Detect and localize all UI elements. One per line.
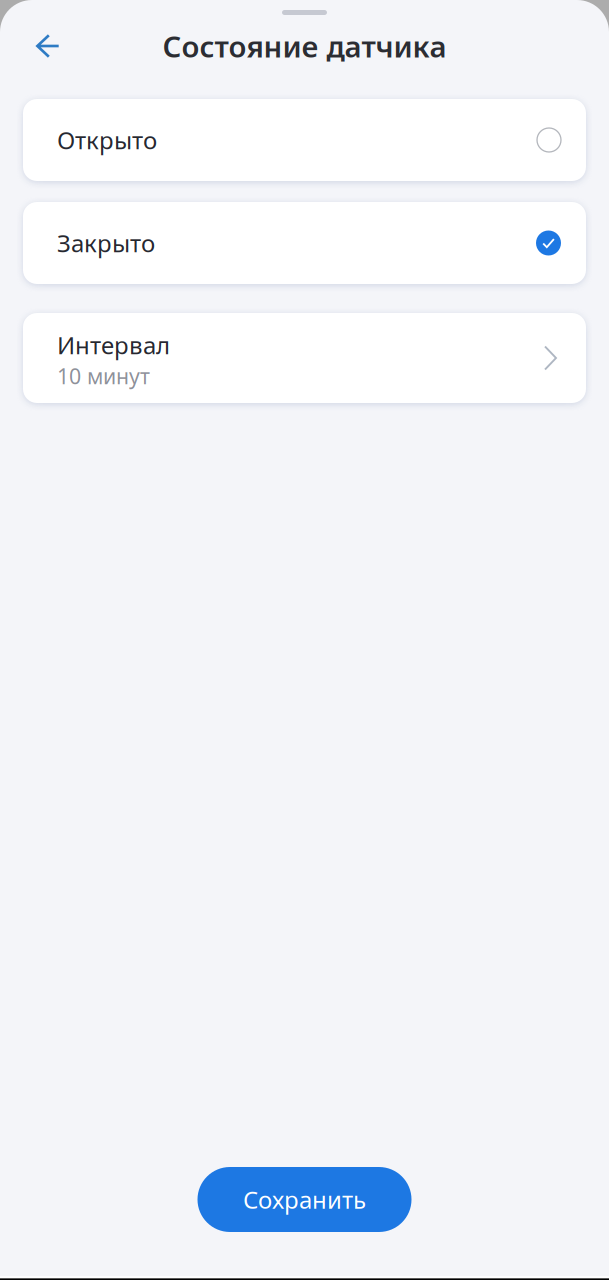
button[interactable]: Открыто: [23, 99, 586, 181]
button[interactable]: Интервал: [23, 313, 586, 403]
staticText: Состояние датчика: [162, 26, 446, 65]
staticText: Интервал: [57, 329, 170, 361]
staticText: Сохранить: [243, 1184, 366, 1215]
button[interactable]: Назад: [25, 23, 71, 69]
button[interactable]: Сохранить: [197, 1167, 411, 1232]
button[interactable]: Закрыто: [23, 202, 586, 284]
staticText: 10 минут: [57, 362, 150, 390]
staticText: Закрыто: [57, 227, 155, 259]
staticText: Открыто: [57, 124, 157, 156]
